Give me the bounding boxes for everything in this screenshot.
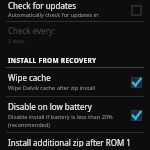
button: Check every: xyxy=(0,22,150,49)
button[interactable]: Disable on low battery xyxy=(0,97,150,132)
button[interactable]: Install additional zip after ROM 1 xyxy=(0,133,150,150)
staticText: Install additional zip after ROM 1 xyxy=(8,137,131,147)
button[interactable]: Check for updates toggle xyxy=(129,3,144,18)
staticText: Check for updates xyxy=(8,0,77,11)
button[interactable]: Wipe cache toggle xyxy=(129,75,144,90)
staticText: Check every: xyxy=(8,25,56,36)
staticText: Disable install if battery is less than … xyxy=(8,113,123,129)
staticText: Wipe cache xyxy=(8,72,51,83)
staticText: Disable on low battery xyxy=(8,101,92,112)
staticText: INSTALL FROM RECOVERY xyxy=(8,56,97,65)
button[interactable]: Disable on low battery toggle xyxy=(129,108,144,123)
staticText: Wipe Dalvik cache after zip install xyxy=(8,84,96,92)
button[interactable]: Check for updates xyxy=(0,0,150,21)
button[interactable]: Wipe cache xyxy=(0,68,150,96)
staticText: 3 days xyxy=(8,37,25,45)
staticText: Automatically check for updates in backg… xyxy=(8,11,123,21)
